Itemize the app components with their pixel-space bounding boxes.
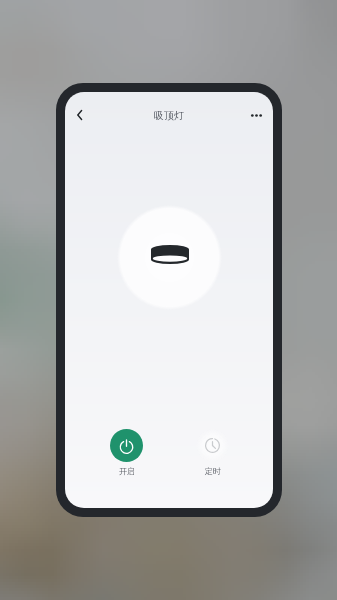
staticText: 定时 <box>205 466 221 476</box>
button[interactable]: Back <box>65 98 96 132</box>
button[interactable]: 开启 <box>110 429 143 476</box>
staticText: 开启 <box>119 466 135 476</box>
button[interactable]: More options <box>243 100 269 130</box>
button[interactable]: 定时 <box>196 429 229 476</box>
staticText: 吸顶灯 <box>154 109 184 122</box>
